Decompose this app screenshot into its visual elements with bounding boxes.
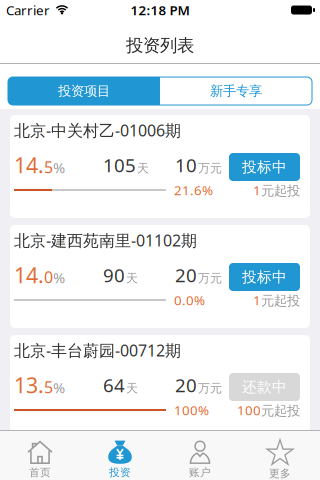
staticText: %: [53, 268, 65, 287]
staticText: 1: [253, 291, 261, 309]
button[interactable]: 新手专享: [160, 77, 312, 105]
staticText: 新手专享: [210, 83, 262, 99]
staticText: 0.0%: [174, 291, 205, 309]
staticText: Carrier: [6, 1, 50, 19]
button[interactable]: 首页: [0, 431, 80, 480]
staticText: 元起投: [261, 402, 300, 419]
staticText: 13.: [14, 371, 44, 399]
button[interactable]: 还款中: [229, 373, 300, 401]
button[interactable]: 账户: [160, 431, 240, 480]
staticText: 0: [44, 266, 53, 288]
staticText: %: [53, 158, 65, 177]
staticText: 北京-建西苑南里-01102期: [14, 230, 197, 251]
staticText: %: [53, 378, 65, 397]
staticText: 更多: [269, 467, 291, 480]
staticText: 天: [137, 161, 149, 176]
staticText: 还款中: [242, 378, 287, 396]
staticText: 北京-中关村乙-01006期: [14, 120, 181, 141]
button[interactable]: 投标中: [229, 153, 300, 181]
button[interactable]: 更多: [240, 431, 320, 480]
staticText: 21.6%: [174, 181, 213, 199]
button[interactable]: 北京-建西苑南里-01102期: [10, 225, 310, 328]
staticText: 账户: [189, 466, 211, 479]
staticText: 投标中: [242, 158, 287, 176]
staticText: 12:18 PM: [130, 1, 189, 19]
button[interactable]: 投资: [80, 431, 160, 480]
staticText: 100%: [174, 401, 209, 419]
staticText: 5: [44, 376, 53, 398]
staticText: 5: [44, 156, 53, 178]
staticText: 14.: [14, 151, 44, 179]
staticText: 北京-丰台蔚园-00712期: [14, 340, 181, 361]
button[interactable]: 北京-丰台蔚园-00712期: [10, 335, 310, 438]
staticText: 投资: [109, 466, 131, 479]
staticText: 20: [175, 373, 197, 397]
staticText: 90: [103, 263, 125, 287]
staticText: 105: [103, 153, 136, 177]
staticText: 投标中: [242, 268, 287, 286]
staticText: 万元: [198, 381, 222, 396]
staticText: 元起投: [261, 182, 300, 199]
staticText: 64: [103, 373, 125, 397]
button[interactable]: 投标中: [229, 263, 300, 291]
staticText: 万元: [198, 161, 222, 176]
staticText: 20: [175, 263, 197, 287]
staticText: 投资列表: [126, 35, 194, 56]
staticText: 14.: [14, 261, 44, 289]
staticText: 10: [175, 153, 197, 177]
staticText: 投资项目: [58, 83, 110, 99]
staticText: 100: [237, 401, 261, 419]
button[interactable]: 北京-中关村乙-01006期: [10, 115, 310, 218]
staticText: 首页: [29, 466, 51, 479]
staticText: 万元: [198, 271, 222, 286]
staticText: 天: [126, 271, 138, 286]
staticText: 天: [126, 381, 138, 396]
staticText: 元起投: [261, 292, 300, 309]
button[interactable]: 投资项目: [8, 77, 160, 105]
staticText: 1: [253, 181, 261, 199]
